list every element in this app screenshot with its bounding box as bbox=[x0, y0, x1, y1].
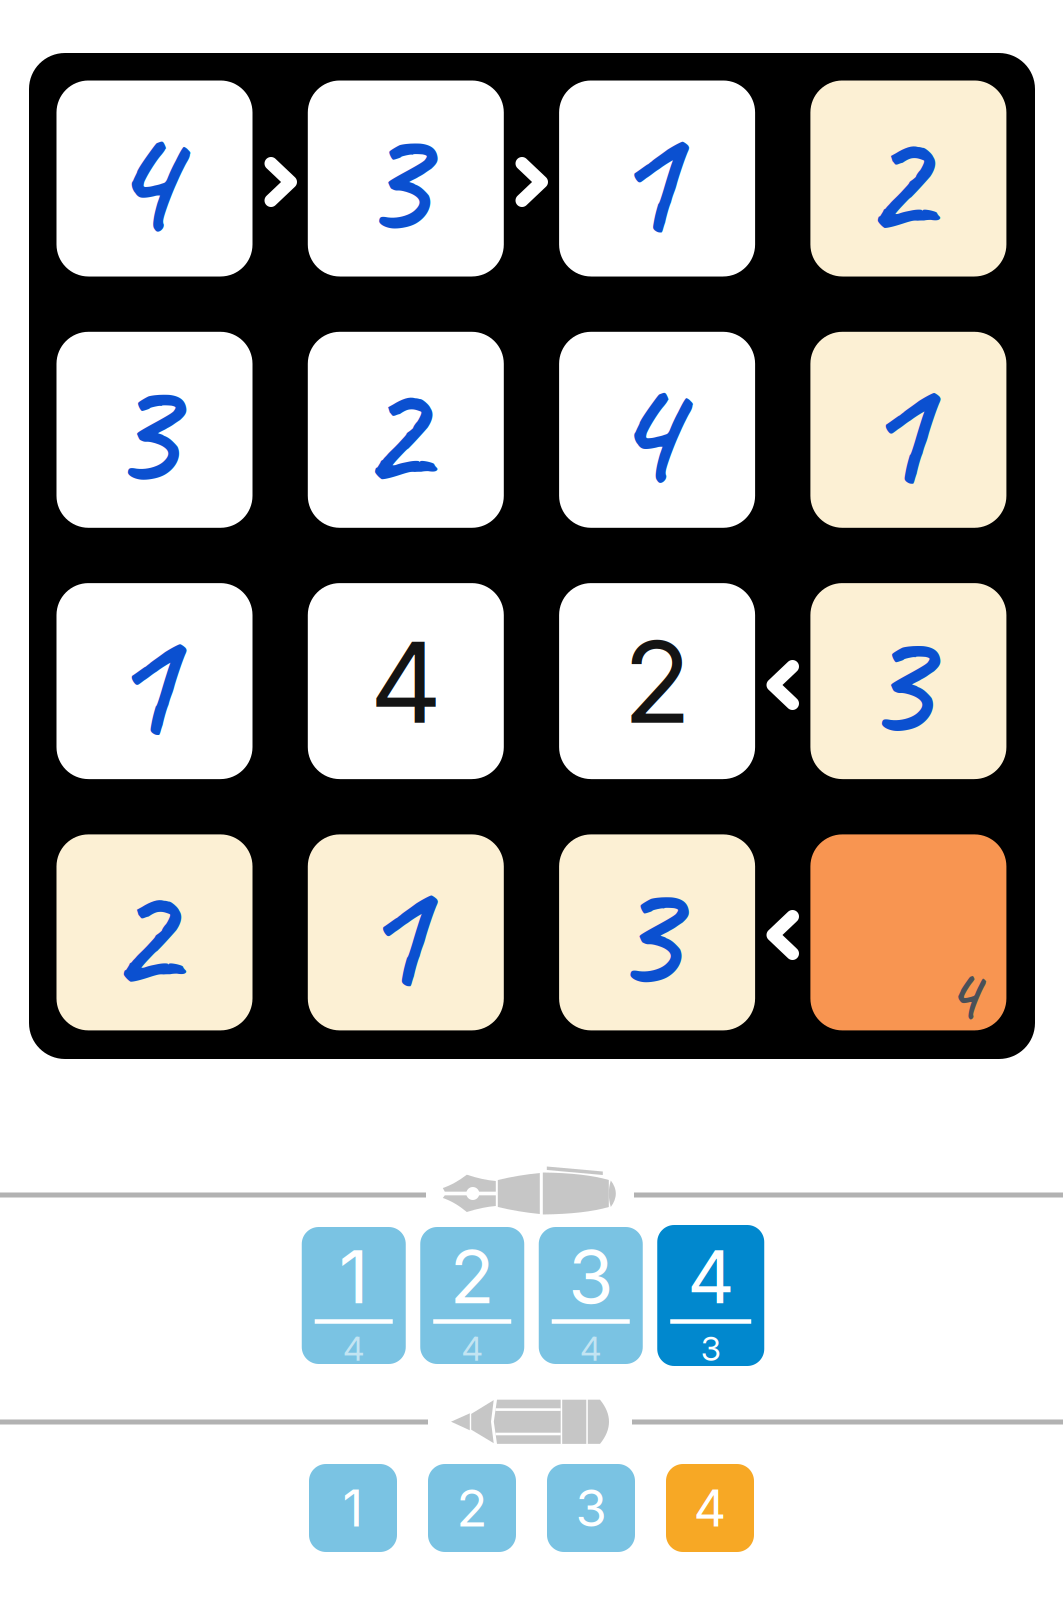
staticText: 4 bbox=[343, 1328, 364, 1369]
staticText: 4 bbox=[608, 331, 679, 529]
button[interactable]: 1 bbox=[302, 1227, 406, 1364]
button[interactable]: 3 bbox=[308, 80, 504, 276]
staticText: 3 bbox=[608, 833, 679, 1031]
staticText: 1 bbox=[105, 582, 176, 780]
staticText: 4 bbox=[945, 947, 979, 1041]
staticText: 3 bbox=[701, 1328, 721, 1369]
button[interactable]: 1 bbox=[559, 80, 755, 276]
staticText: 4 bbox=[580, 1328, 601, 1369]
staticText: 1 bbox=[859, 331, 930, 529]
button[interactable]: 1 bbox=[56, 583, 252, 779]
staticText: 4 bbox=[370, 614, 442, 750]
staticText: 1 bbox=[339, 1232, 369, 1321]
button[interactable]: 3 bbox=[559, 834, 755, 1030]
button[interactable]: 1 bbox=[810, 332, 1006, 528]
button[interactable]: 2 bbox=[308, 332, 504, 528]
staticText: 2 bbox=[105, 833, 176, 1031]
button[interactable]: 2 bbox=[428, 1464, 516, 1552]
staticText: 4 bbox=[105, 79, 176, 278]
staticText: 4 bbox=[462, 1328, 483, 1369]
staticText: 3 bbox=[105, 331, 176, 529]
staticText: 3 bbox=[575, 1477, 606, 1539]
button[interactable]: 3 bbox=[539, 1227, 643, 1364]
staticText: 4 bbox=[693, 1477, 726, 1539]
staticText: 4 bbox=[687, 1232, 734, 1321]
staticText: 3 bbox=[356, 79, 427, 278]
button[interactable]: 2 bbox=[420, 1227, 524, 1364]
button[interactable]: 2 bbox=[559, 583, 755, 779]
staticText: 3 bbox=[568, 1232, 613, 1321]
button[interactable]: 1 bbox=[309, 1464, 397, 1552]
button[interactable]: 3 bbox=[547, 1464, 635, 1552]
staticText: 1 bbox=[608, 79, 679, 278]
button[interactable]: 3 bbox=[810, 583, 1006, 779]
staticText: 2 bbox=[859, 79, 930, 278]
button[interactable]: 4 bbox=[810, 834, 1006, 1030]
button[interactable]: 4 bbox=[666, 1464, 754, 1552]
button[interactable]: 2 bbox=[810, 80, 1006, 276]
staticText: 1 bbox=[342, 1477, 363, 1539]
button[interactable]: 2 bbox=[56, 834, 252, 1030]
button[interactable]: 4 bbox=[56, 80, 252, 276]
button[interactable]: 4 bbox=[559, 332, 755, 528]
staticText: 3 bbox=[859, 582, 930, 780]
button[interactable]: 1 bbox=[308, 834, 504, 1030]
staticText: 2 bbox=[623, 614, 691, 750]
button[interactable]: 4 bbox=[308, 583, 504, 779]
staticText: 1 bbox=[356, 833, 427, 1031]
staticText: 2 bbox=[456, 1477, 487, 1539]
staticText: 2 bbox=[450, 1232, 495, 1321]
button[interactable]: 4 bbox=[657, 1225, 764, 1366]
button[interactable]: 3 bbox=[56, 332, 252, 528]
staticText: 2 bbox=[356, 331, 427, 529]
